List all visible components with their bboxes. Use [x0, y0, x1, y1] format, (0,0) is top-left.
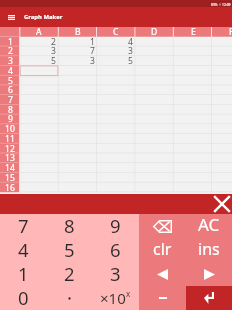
button[interactable]: 9	[0, 114, 20, 124]
button[interactable]: 5	[97, 56, 135, 66]
button[interactable]	[20, 76, 58, 86]
button[interactable]	[212, 163, 232, 173]
button[interactable]: 2	[20, 37, 58, 47]
button[interactable]: D	[135, 27, 173, 37]
button[interactable]: 14	[0, 163, 20, 173]
button[interactable]	[97, 124, 135, 134]
button[interactable]	[135, 46, 173, 56]
button[interactable]	[212, 124, 232, 134]
button[interactable]	[59, 114, 97, 124]
button[interactable]	[20, 163, 58, 173]
button[interactable]: 6	[0, 85, 20, 95]
button[interactable]	[59, 163, 97, 173]
button[interactable]	[212, 46, 232, 56]
button[interactable]	[212, 85, 232, 95]
button[interactable]	[20, 85, 58, 95]
button[interactable]: 16	[0, 183, 20, 193]
button[interactable]: 1	[0, 262, 46, 286]
button[interactable]: F	[212, 27, 232, 37]
button[interactable]: 4	[0, 238, 46, 262]
button[interactable]	[59, 66, 97, 76]
button[interactable]	[174, 124, 212, 134]
button[interactable]: 11	[0, 134, 20, 144]
button[interactable]	[174, 173, 212, 183]
button[interactable]	[59, 134, 97, 144]
button[interactable]	[212, 56, 232, 66]
button[interactable]	[212, 95, 232, 105]
button[interactable]	[174, 95, 212, 105]
button[interactable]: 8	[0, 105, 20, 115]
button[interactable]	[59, 85, 97, 95]
button[interactable]	[212, 114, 232, 124]
button[interactable]: 3	[20, 46, 58, 56]
button[interactable]	[20, 95, 58, 105]
button[interactable]: 12	[0, 144, 20, 154]
button[interactable]	[97, 114, 135, 124]
button[interactable]: 10	[0, 124, 20, 134]
button[interactable]: 15	[0, 173, 20, 183]
button[interactable]	[212, 153, 232, 163]
button[interactable]: 7	[0, 214, 46, 238]
button[interactable]: 7	[59, 46, 97, 56]
button[interactable]	[97, 153, 135, 163]
button[interactable]: 5	[46, 238, 92, 262]
button[interactable]: 3	[97, 46, 135, 56]
button[interactable]	[174, 153, 212, 163]
button[interactable]: 8	[46, 214, 92, 238]
button[interactable]: ×10	[92, 286, 138, 310]
button[interactable]	[174, 163, 212, 173]
button[interactable]: 7	[0, 95, 20, 105]
button[interactable]	[174, 114, 212, 124]
button[interactable]	[135, 153, 173, 163]
button[interactable]: C	[97, 27, 135, 37]
button[interactable]: 6	[92, 238, 138, 262]
button[interactable]	[135, 85, 173, 95]
button[interactable]	[97, 66, 135, 76]
button[interactable]	[174, 66, 212, 76]
button[interactable]	[59, 124, 97, 134]
button[interactable]: 5	[20, 56, 58, 66]
button[interactable]	[135, 114, 173, 124]
button[interactable]	[59, 173, 97, 183]
button[interactable]: 2	[0, 46, 20, 56]
button[interactable]: E	[174, 27, 212, 37]
button[interactable]	[97, 95, 135, 105]
button[interactable]: Minus	[139, 286, 186, 310]
button[interactable]: Decimal point	[46, 286, 92, 310]
button[interactable]: 9	[92, 214, 138, 238]
button[interactable]: AC	[186, 214, 232, 238]
button[interactable]	[174, 134, 212, 144]
button[interactable]	[174, 46, 212, 56]
button[interactable]: 4	[0, 66, 20, 76]
button[interactable]	[97, 163, 135, 173]
button[interactable]	[59, 153, 97, 163]
button[interactable]	[135, 134, 173, 144]
button[interactable]: 3	[0, 56, 20, 66]
button[interactable]: Close keypad	[212, 194, 232, 214]
button[interactable]: Backspace	[139, 214, 186, 238]
button[interactable]: Move right	[186, 262, 232, 286]
